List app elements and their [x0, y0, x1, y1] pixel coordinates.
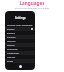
staticText: Choose your language	[7, 23, 33, 26]
staticText: Francais	[7, 36, 33, 39]
staticText: Settings	[15, 16, 26, 20]
staticText: Portugues	[7, 48, 33, 51]
staticText: Languages	[0, 0, 64, 6]
staticText: Svenska	[7, 56, 33, 59]
button[interactable]: Deutsch	[5, 39, 35, 43]
button[interactable]: Italiano	[5, 43, 35, 47]
button[interactable]: Home	[19, 65, 22, 68]
staticText: English	[7, 28, 31, 31]
button[interactable]: Espanol	[5, 31, 35, 35]
staticText: Italiano	[7, 44, 33, 47]
button[interactable]: Polski	[5, 59, 35, 63]
button[interactable]: Svenska	[5, 55, 35, 59]
staticText: Polski	[7, 60, 33, 63]
button[interactable]: Francais	[5, 35, 35, 39]
staticText: Choose the language you prefer	[0, 7, 64, 10]
button[interactable]: Portugues	[5, 47, 35, 51]
button[interactable]: English	[5, 27, 35, 31]
staticText: Espanol	[7, 32, 33, 35]
staticText: Deutsch	[7, 40, 33, 43]
staticText: Nederlands	[7, 52, 33, 55]
button[interactable]: Nederlands	[5, 51, 35, 55]
